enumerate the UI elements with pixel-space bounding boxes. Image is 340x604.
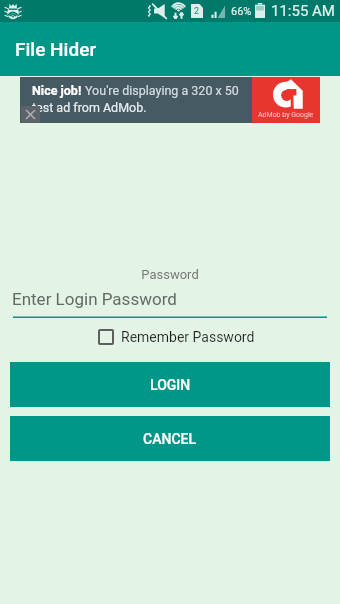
button[interactable]: LOGIN	[10, 362, 330, 407]
staticText: test ad from AdMob.	[32, 100, 147, 115]
staticText: Nice job!	[32, 83, 85, 98]
staticText: LOGIN	[150, 377, 191, 393]
staticText: AdMob by Google	[258, 111, 314, 119]
staticText: 2	[194, 6, 200, 17]
staticText: 66%	[231, 5, 252, 18]
button[interactable]: CANCEL	[10, 416, 330, 461]
staticText: Password	[0, 267, 340, 282]
button[interactable]: Close ad	[21, 106, 40, 123]
staticText: 11:55 AM	[271, 2, 335, 20]
staticText: Enter Login Password	[12, 289, 177, 309]
staticText: CANCEL	[143, 431, 197, 447]
staticText: File Hider	[15, 38, 97, 60]
staticText: Remember Password	[121, 329, 255, 345]
staticText: You're displaying a 320 x 50	[85, 83, 239, 98]
button[interactable]: Remember Password	[98, 329, 255, 345]
